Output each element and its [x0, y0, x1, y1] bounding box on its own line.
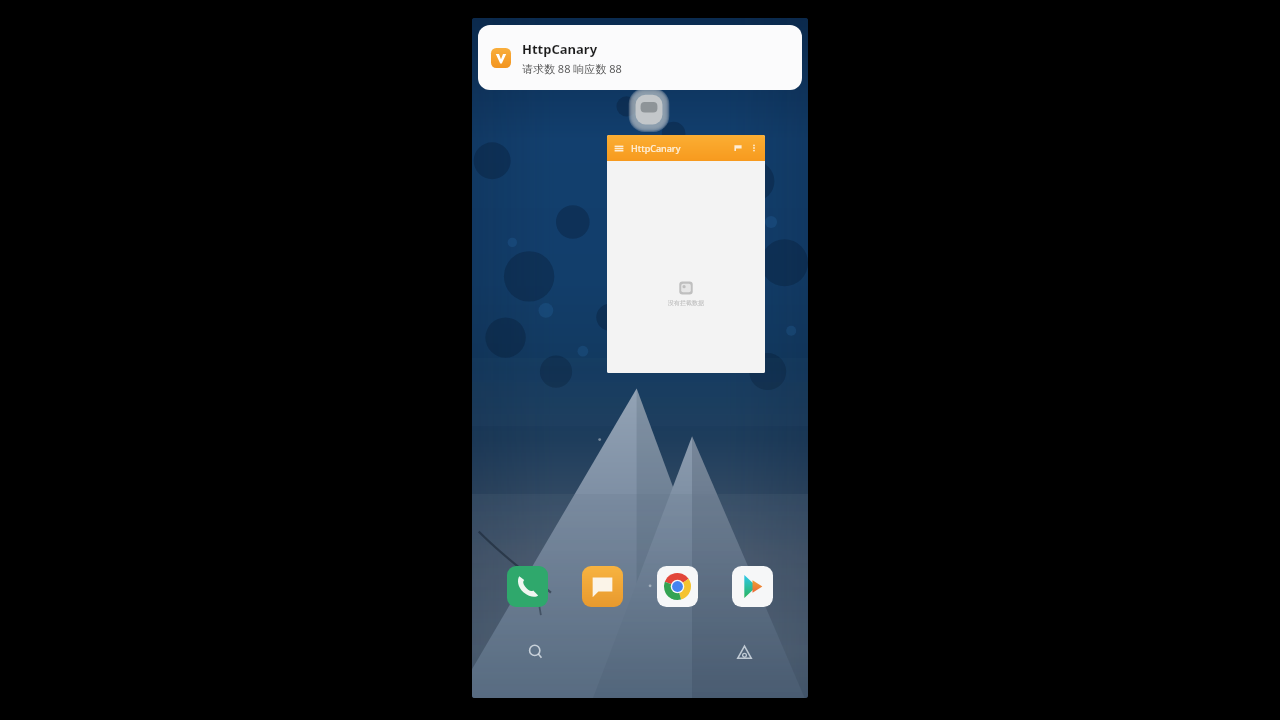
- button[interactable]: HttpCanary: [478, 25, 802, 90]
- button[interactable]: Assistant: [730, 638, 758, 666]
- button[interactable]: Search: [522, 638, 550, 666]
- staticText: HttpCanary: [522, 40, 598, 58]
- button[interactable]: Messages: [580, 564, 625, 609]
- button[interactable]: Chrome: [655, 564, 700, 609]
- staticText: 没有拦截数据: [668, 299, 704, 307]
- button[interactable]: Phone: [505, 564, 550, 609]
- staticText: 请求数 88 响应数 88: [522, 61, 622, 76]
- staticText: HttpCanary: [631, 142, 681, 154]
- button[interactable]: HttpCanary: [607, 135, 765, 373]
- button[interactable]: Play Store: [730, 564, 775, 609]
